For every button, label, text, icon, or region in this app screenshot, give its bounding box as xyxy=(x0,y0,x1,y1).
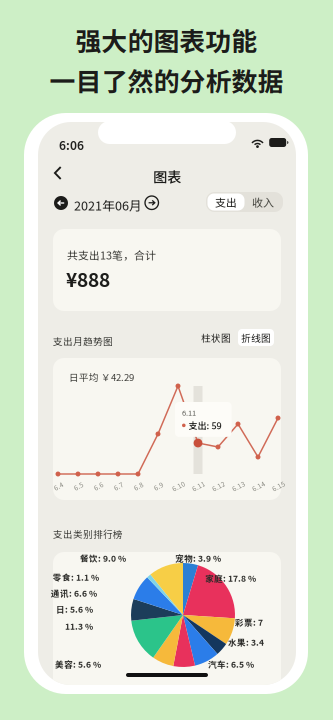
button[interactable]: Back xyxy=(46,161,70,185)
staticText: 柱状图 xyxy=(201,330,231,344)
staticText: 图表 xyxy=(153,166,181,186)
staticText: 6.5 xyxy=(73,481,83,491)
staticText: 6.9 xyxy=(153,481,163,491)
staticText: 支出 xyxy=(215,194,237,210)
staticText: 汽车: 6.5 % xyxy=(208,658,254,670)
staticText: 6.14 xyxy=(251,481,265,491)
button[interactable]: 折线图 xyxy=(238,329,274,346)
staticText: 日: 5.6 % xyxy=(56,603,93,615)
staticText: 一目了然的分析数据 xyxy=(49,61,283,99)
staticText: 支出类别排行榜 xyxy=(53,527,123,541)
staticText: 收入 xyxy=(252,194,274,210)
staticText: 美容: 5.6 % xyxy=(55,658,101,670)
staticText: 6:06 xyxy=(59,136,84,153)
staticText: 支出: 59 xyxy=(189,419,222,432)
staticText: 6.4 xyxy=(53,481,63,491)
button[interactable]: 柱状图 xyxy=(198,329,234,346)
staticText: 餐饮: 9.0 % xyxy=(80,552,126,564)
staticText: 折线图 xyxy=(241,330,271,344)
button[interactable]: Previous month xyxy=(54,196,68,210)
button[interactable]: 支出 xyxy=(207,193,244,210)
staticText: 强大的图表功能 xyxy=(75,21,257,58)
staticText: 共支出13笔，合计 xyxy=(67,247,156,263)
staticText: 家庭: 17.8 % xyxy=(205,572,256,584)
staticText: 6.8 xyxy=(133,481,143,491)
staticText: 日平均 ￥42.29 xyxy=(69,370,134,384)
staticText: 6.12 xyxy=(211,481,225,491)
staticText: 6.11 xyxy=(182,407,196,418)
staticText: 6.10 xyxy=(171,481,185,491)
staticText: 支出月趋势图 xyxy=(53,334,113,348)
staticText: 6.7 xyxy=(113,481,123,491)
staticText: 6.15 xyxy=(271,481,285,491)
staticText: 2021年06月 xyxy=(74,196,142,214)
staticText: 宠物: 3.9 % xyxy=(175,552,221,564)
button[interactable]: Next month xyxy=(145,196,158,209)
staticText: 通讯: 6.6 % xyxy=(51,587,97,599)
staticText: ¥888 xyxy=(66,265,110,292)
button[interactable]: 收入 xyxy=(244,193,281,210)
staticText: 6.6 xyxy=(93,481,103,491)
staticText: 11.3 % xyxy=(65,620,93,632)
staticText: 水果: 3.4 xyxy=(228,636,264,648)
staticText: 彩票: 7 xyxy=(235,616,263,628)
staticText: 6.13 xyxy=(231,481,245,491)
staticText: 6.11 xyxy=(191,481,205,491)
staticText: 零食: 1.1 % xyxy=(53,571,99,583)
